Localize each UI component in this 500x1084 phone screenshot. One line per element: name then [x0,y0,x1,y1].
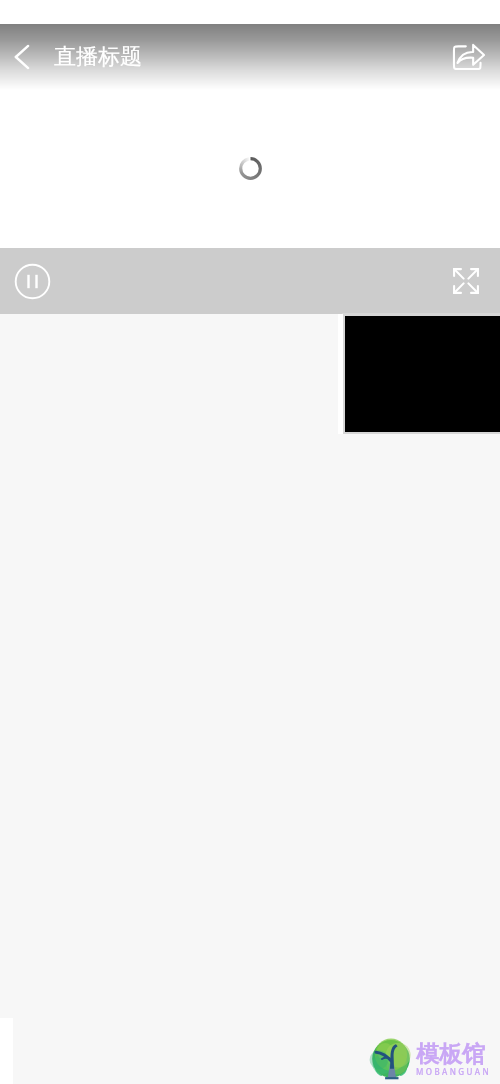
button[interactable]: Back [0,35,44,79]
staticText: 模板馆 [416,1040,485,1069]
button[interactable]: Share [445,33,493,81]
staticText: MOBANGUAN [416,1066,491,1077]
staticText: 直播标题 [54,43,142,71]
button[interactable]: Fullscreen [444,259,488,303]
button[interactable]: Pause [10,259,54,303]
button[interactable]: Video player [0,0,500,248]
